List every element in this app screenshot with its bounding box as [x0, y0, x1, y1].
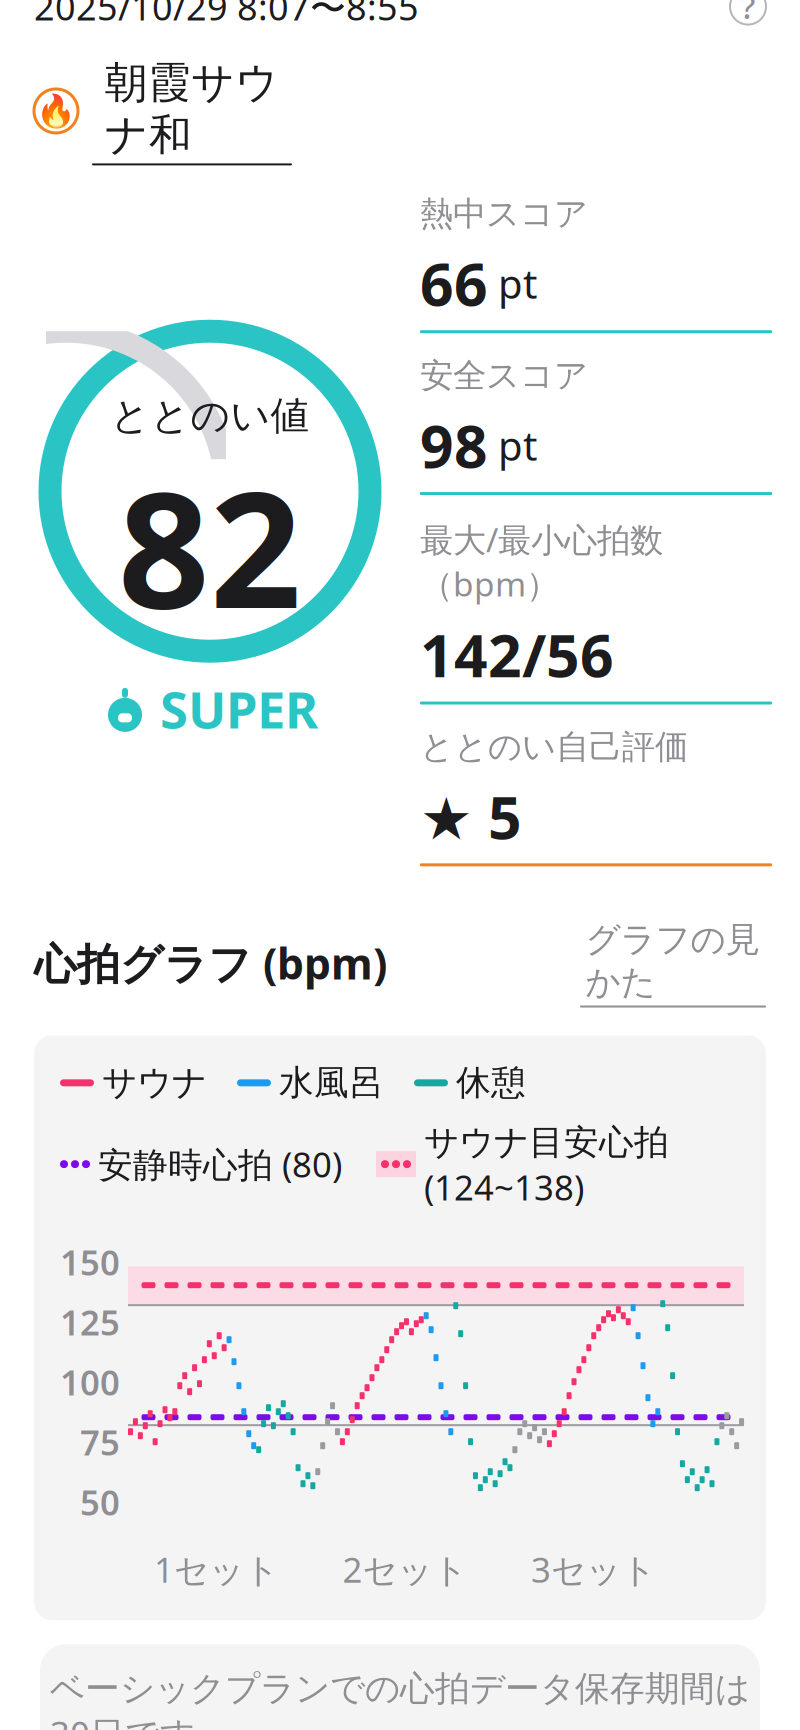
staticText: 安静時心拍 (80)	[98, 1141, 342, 1187]
staticText: 66	[420, 244, 488, 322]
staticText: 心拍グラフ (bpm)	[34, 935, 387, 991]
staticText: ?	[741, 0, 755, 28]
staticText: サウナ	[102, 1061, 207, 1104]
staticText: ととのい自己評価	[420, 726, 688, 767]
staticText: 142/56	[420, 616, 614, 693]
staticText: 熱中スコア	[420, 193, 588, 234]
staticText: 82	[118, 440, 302, 652]
staticText: SUPER	[160, 675, 318, 742]
staticText: 98	[420, 406, 488, 484]
staticText: 150	[60, 1239, 120, 1285]
button[interactable]: グラフの見かた	[580, 918, 766, 1008]
staticText: サウナ目安心拍 (124~138)	[424, 1118, 669, 1210]
staticText: 休憩	[456, 1061, 526, 1104]
staticText: 朝霞サウナ和	[105, 57, 279, 161]
staticText: 50	[80, 1479, 120, 1525]
button[interactable]: 🔥	[0, 57, 800, 165]
staticText: 125	[60, 1299, 120, 1345]
staticText: ★ 5	[420, 777, 522, 855]
staticText: 🔥	[36, 93, 76, 129]
staticText: 100	[60, 1359, 120, 1405]
button[interactable]: ヘルプ	[730, 0, 766, 25]
staticText: 最大/最小心拍数（bpm）	[420, 517, 663, 606]
staticText: 75	[80, 1419, 120, 1465]
staticText: 2セット	[342, 1546, 467, 1592]
staticText: グラフの見かた	[585, 918, 760, 1004]
staticText: 水風呂	[279, 1061, 384, 1104]
staticText: 2025/10/29 8:07〜8:55	[34, 0, 419, 31]
staticText: 1セット	[154, 1546, 279, 1592]
staticText: 3セット	[531, 1546, 656, 1592]
staticText: pt	[488, 419, 537, 472]
staticText: pt	[488, 257, 537, 310]
staticText: ととのい値	[110, 392, 309, 440]
staticText: ベーシックプランでの心拍データ保存期間は 30日です	[50, 1664, 750, 1730]
staticText: 安全スコア	[420, 355, 588, 396]
